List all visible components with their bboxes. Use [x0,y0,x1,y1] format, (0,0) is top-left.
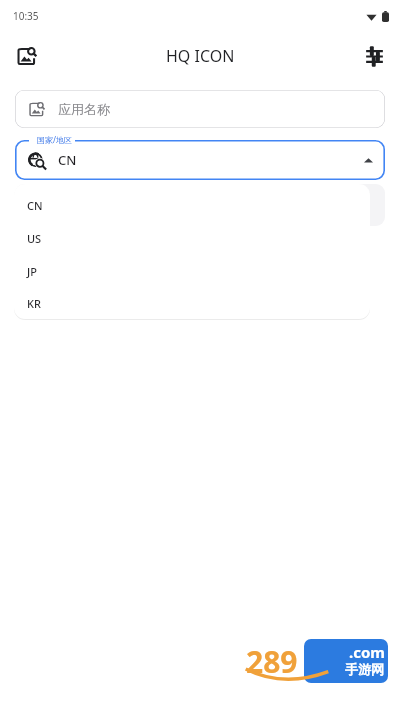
staticText: JP [27,264,37,279]
button[interactable]: CN [14,189,370,222]
button[interactable]: CN [15,140,385,180]
button[interactable]: KR [14,288,370,319]
button[interactable]: 1024px [262,187,385,213]
staticText: CN [58,151,77,169]
staticText: .com [349,642,385,662]
button[interactable]: 应用名称 [15,90,385,128]
button[interactable]: Pick app icon [6,36,46,76]
staticText: US [27,231,42,246]
staticText: 10:35 [13,9,39,23]
staticText: CN [27,198,43,213]
button[interactable]: US [14,222,370,255]
button[interactable]: Settings [354,36,394,76]
staticText: KR [27,296,41,311]
staticText: 国家/地区 [37,134,72,145]
staticText: 手游网 [345,661,384,677]
button[interactable]: JP [14,255,370,288]
button[interactable]: 256px [15,187,139,213]
staticText: 289 [246,641,298,682]
staticText: 应用名称 [58,101,110,117]
staticText: HQ ICON [166,45,235,67]
